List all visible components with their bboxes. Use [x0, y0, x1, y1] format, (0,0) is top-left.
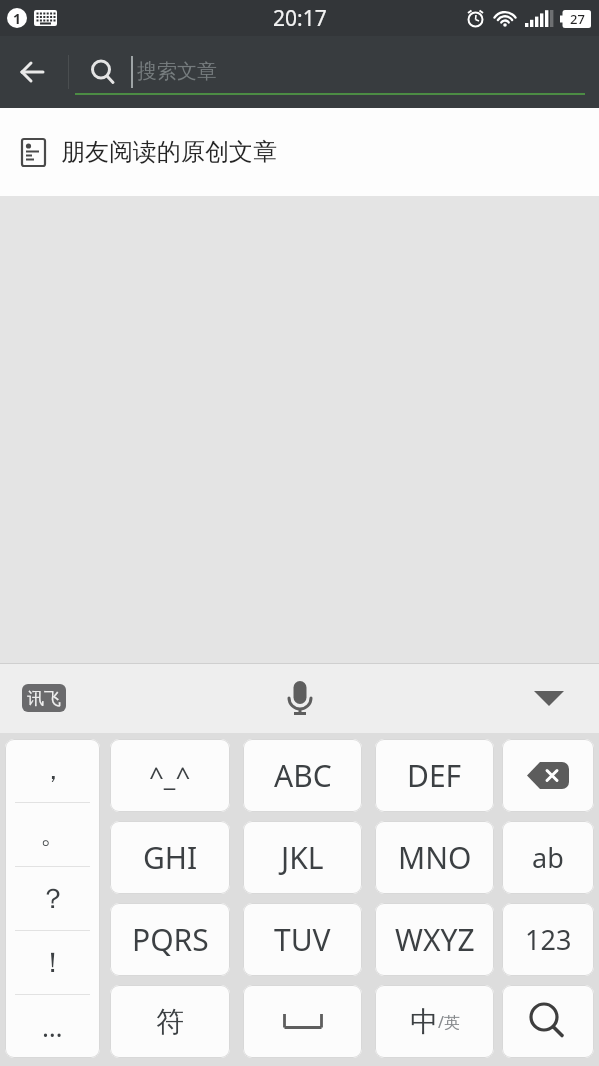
staticText: 讯飞 — [27, 688, 61, 709]
button[interactable]: PQRS — [110, 903, 230, 976]
staticText: ？ — [39, 881, 67, 916]
button[interactable] — [502, 739, 594, 812]
staticText: 20:17 — [273, 4, 327, 33]
button[interactable]: JKL — [243, 821, 362, 894]
button[interactable] — [270, 670, 330, 726]
button[interactable] — [526, 678, 572, 718]
button[interactable]: WXYZ — [375, 903, 494, 976]
button[interactable]: ！ — [5, 931, 100, 994]
button[interactable]: ABC — [243, 739, 362, 812]
staticText: TUV — [274, 919, 331, 960]
button[interactable] — [0, 36, 64, 108]
staticText: PQRS — [132, 919, 209, 960]
button[interactable]: 符 — [110, 985, 230, 1058]
staticText: ab — [532, 839, 564, 876]
button[interactable]: 。 — [5, 803, 100, 866]
staticText: 符 — [156, 1004, 184, 1039]
button[interactable]: 中 — [375, 985, 494, 1058]
button[interactable]: ab — [502, 821, 594, 894]
button[interactable]: 123 — [502, 903, 594, 976]
button[interactable] — [502, 985, 594, 1058]
button[interactable]: MNO — [375, 821, 494, 894]
button[interactable]: ^_^ — [110, 739, 230, 812]
staticText: 朋友阅读的原创文章 — [61, 137, 277, 167]
staticText: GHI — [143, 837, 198, 878]
staticText: ^_^ — [149, 758, 191, 793]
button[interactable]: ？ — [5, 867, 100, 930]
button[interactable]: 朋友阅读的原创文章 — [0, 108, 599, 196]
staticText: 。 — [40, 818, 66, 851]
staticText: 1 — [13, 9, 22, 28]
button[interactable]: DEF — [375, 739, 494, 812]
staticText: … — [42, 1009, 63, 1044]
staticText: ABC — [274, 755, 332, 796]
staticText: 123 — [525, 921, 572, 958]
button[interactable]: 讯飞 — [22, 684, 66, 712]
button[interactable]: ， — [5, 739, 100, 802]
staticText: 中 — [410, 1004, 438, 1039]
staticText: ！ — [39, 945, 67, 980]
staticText: ， — [40, 754, 66, 787]
staticText: MNO — [398, 837, 472, 878]
staticText: /英 — [438, 1011, 460, 1033]
button[interactable]: … — [5, 995, 100, 1058]
staticText: JKL — [281, 837, 324, 878]
staticText: WXYZ — [395, 919, 475, 960]
button[interactable] — [243, 985, 362, 1058]
staticText: 搜索文章 — [137, 59, 217, 84]
staticText: DEF — [407, 755, 462, 796]
button[interactable]: TUV — [243, 903, 362, 976]
staticText: 27 — [570, 10, 585, 28]
button[interactable]: ， — [5, 739, 100, 1058]
button[interactable]: GHI — [110, 821, 230, 894]
